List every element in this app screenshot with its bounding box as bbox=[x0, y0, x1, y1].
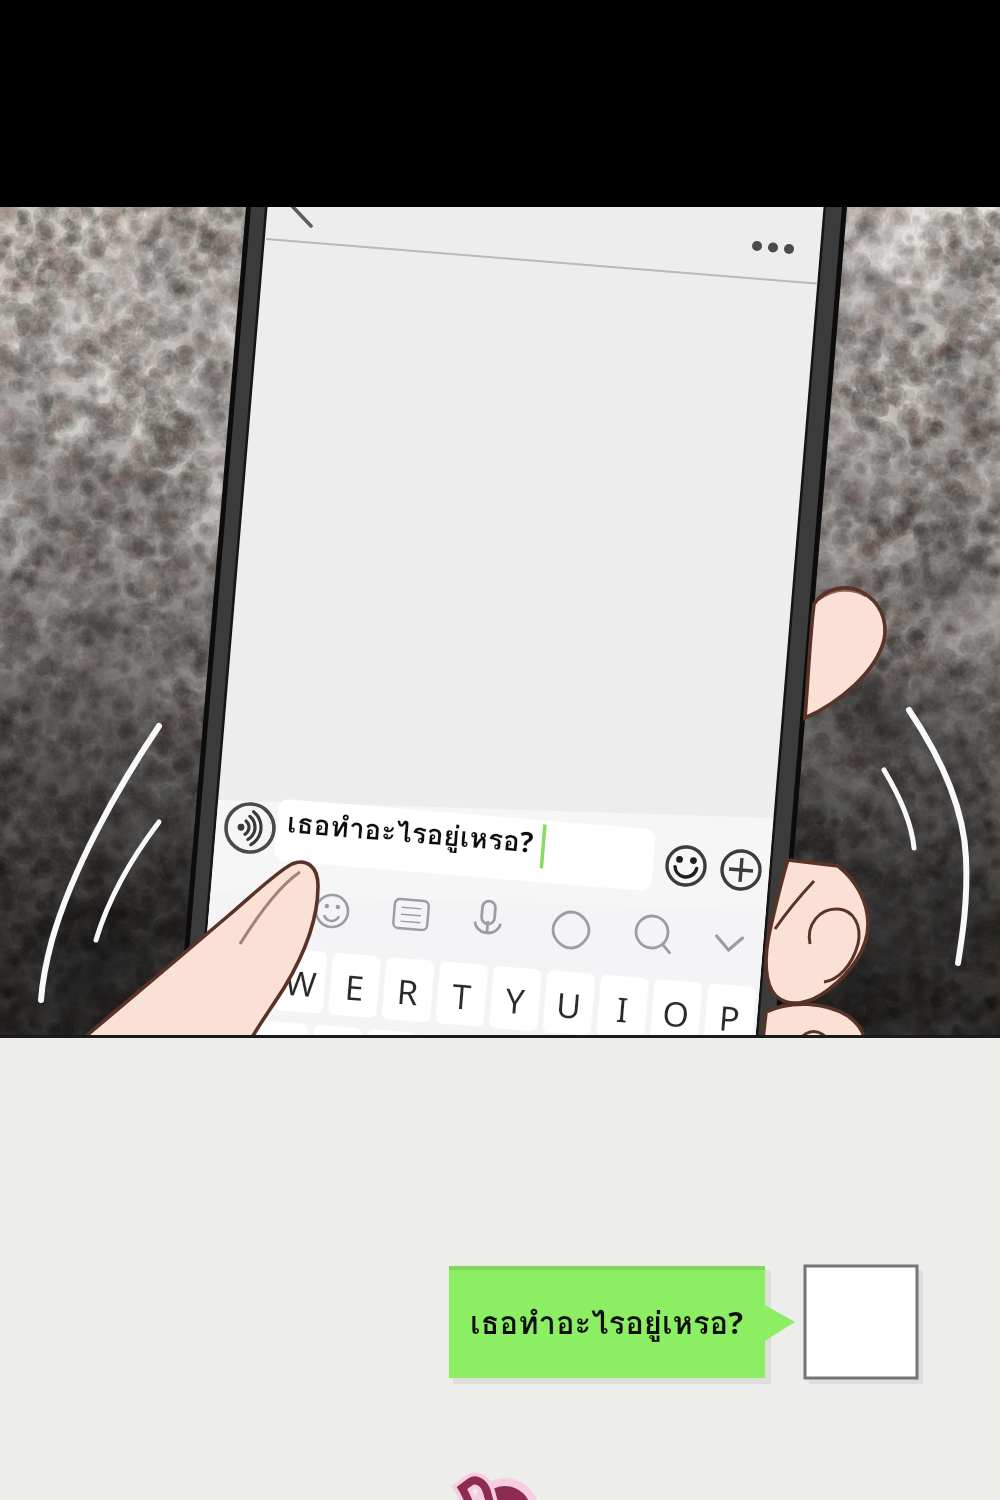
button[interactable]: Hide keyboard bbox=[709, 924, 753, 968]
button[interactable]: Emoji bbox=[666, 846, 708, 888]
button[interactable]: Themes bbox=[551, 910, 595, 954]
button[interactable]: Profile picture bbox=[805, 1266, 917, 1378]
button[interactable]: Search bbox=[632, 912, 676, 956]
button[interactable]: GIF bbox=[391, 895, 435, 939]
button[interactable]: Stickers bbox=[312, 891, 356, 935]
button[interactable]: Voice message bbox=[230, 806, 278, 854]
button[interactable]: Message input bbox=[276, 810, 656, 872]
staticText: เธอทำอะไรอยู่เหรอ? bbox=[470, 1298, 744, 1347]
button[interactable]: เธอทำอะไรอยู่เหรอ? bbox=[449, 1266, 765, 1378]
button[interactable]: Voice input bbox=[468, 899, 512, 943]
button[interactable]: More options bbox=[740, 226, 804, 270]
button[interactable]: Attach bbox=[721, 850, 763, 892]
button[interactable]: Back bbox=[282, 196, 334, 248]
